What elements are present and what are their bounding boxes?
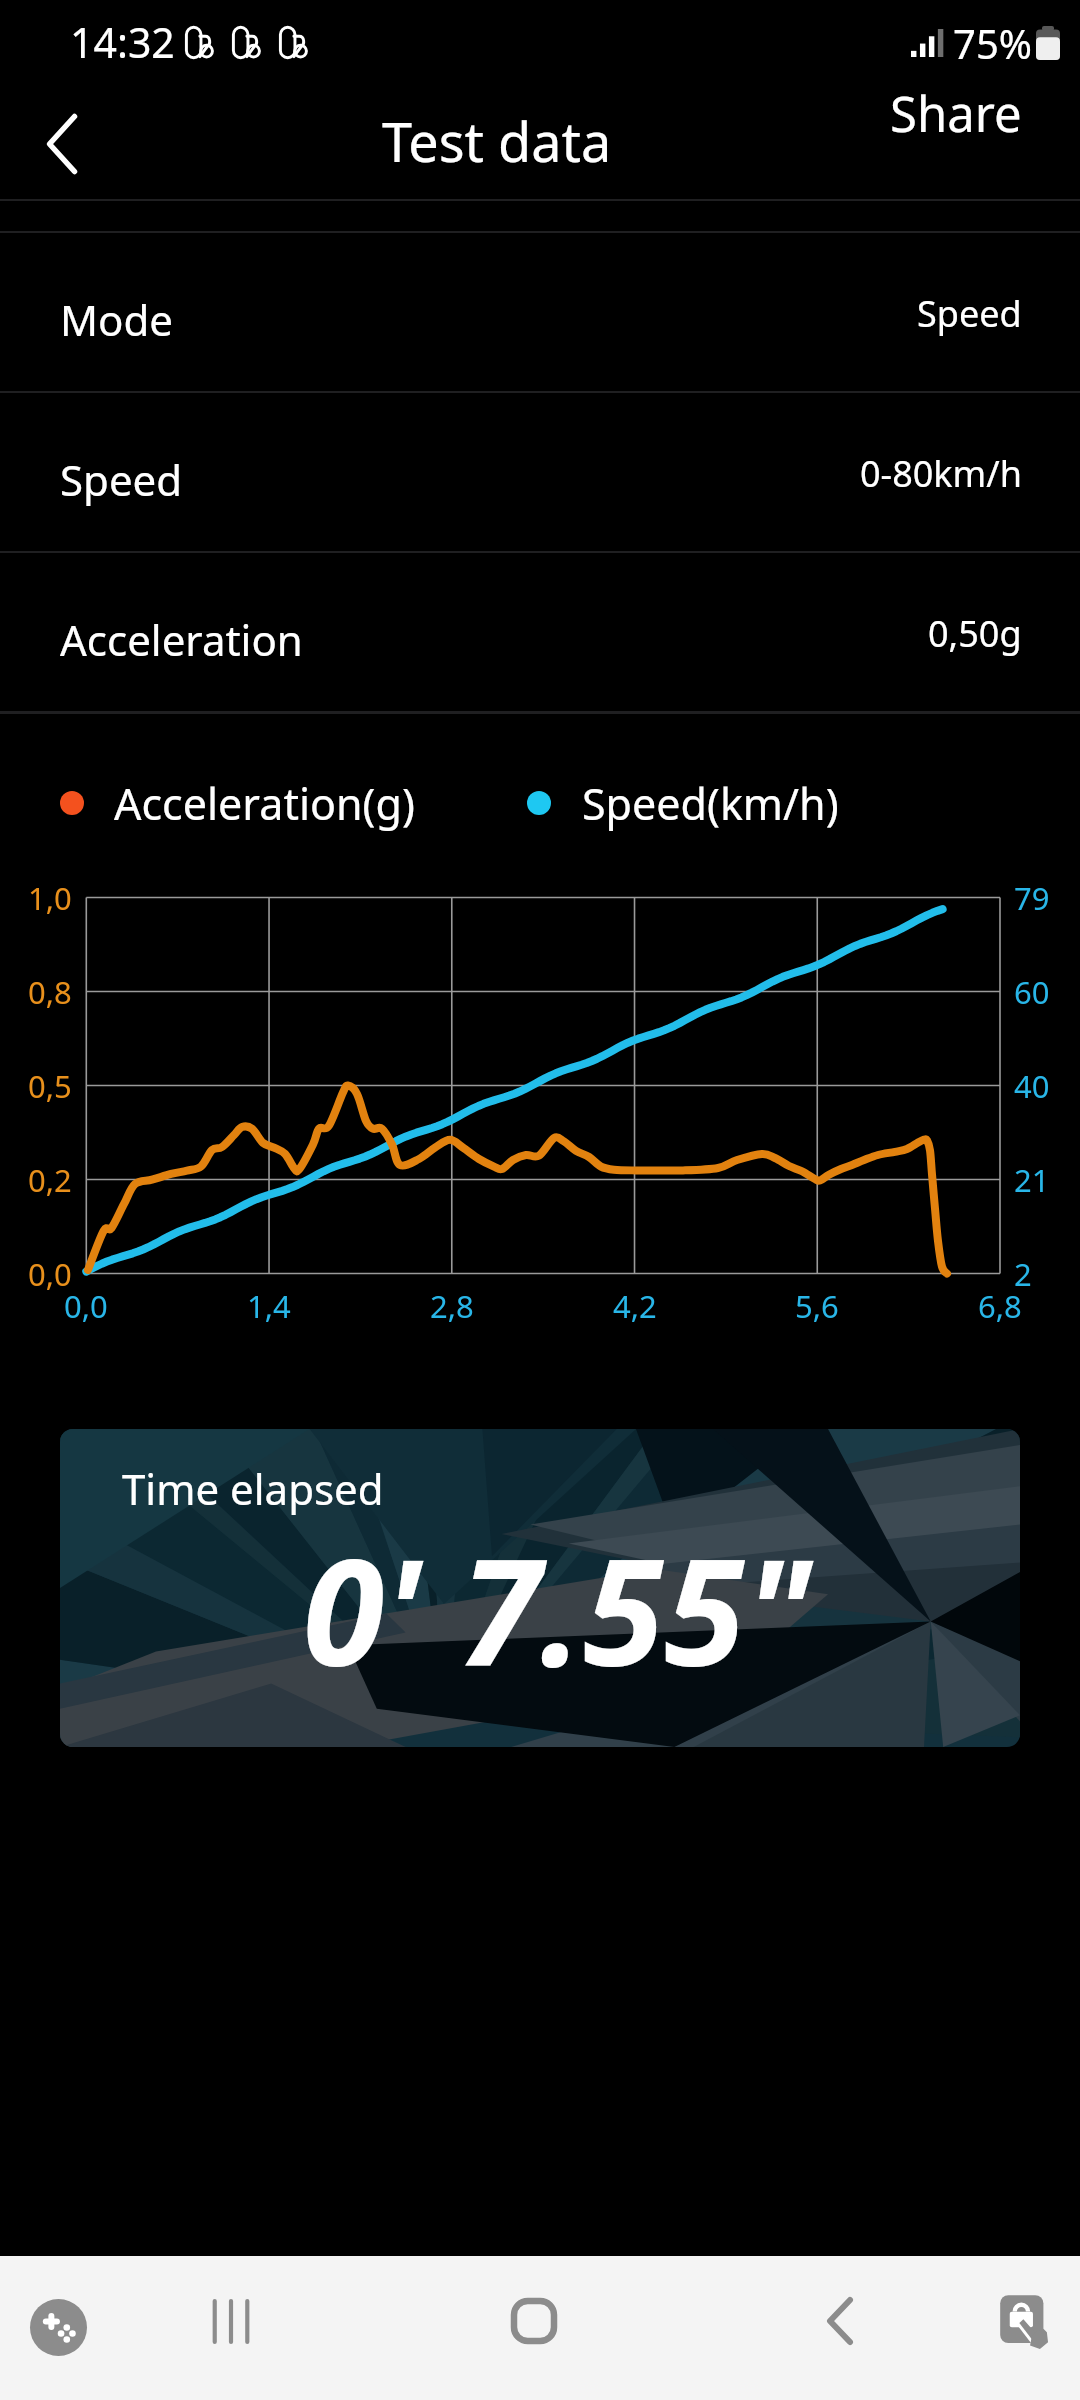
staticText: 79 <box>1014 877 1050 919</box>
button[interactable]: Mode <box>0 231 1080 391</box>
staticText: 0-80km/h <box>860 449 1022 498</box>
staticText: Speed <box>60 451 183 508</box>
staticText: Mode <box>60 291 174 348</box>
button[interactable]: Recent apps <box>178 2267 286 2375</box>
staticText: Speed(km/h) <box>582 774 839 833</box>
staticText: 0,0 <box>28 1253 72 1295</box>
staticText: Share <box>890 80 1022 147</box>
staticText: 0,8 <box>28 971 72 1013</box>
button[interactable]: Back <box>14 96 110 192</box>
button[interactable]: Acceleration <box>0 551 1080 711</box>
staticText: 21 <box>1014 1159 1050 1201</box>
staticText: 75% <box>953 16 1032 70</box>
button[interactable]: Home <box>480 2267 588 2375</box>
staticText: 0,5 <box>28 1065 72 1107</box>
staticText: 40 <box>1014 1065 1050 1107</box>
button[interactable]: Speed <box>0 391 1080 551</box>
button[interactable]: Game launcher <box>22 2291 94 2363</box>
button[interactable]: Back <box>786 2267 894 2375</box>
staticText: 2,8 <box>430 1285 474 1327</box>
staticText: 0,50g <box>928 609 1022 658</box>
staticText: Time elapsed <box>122 1460 384 1517</box>
button[interactable]: Time elapsed <box>60 1429 1020 1747</box>
staticText: Acceleration <box>60 611 303 668</box>
staticText: 0' 7.55" <box>303 1509 812 1709</box>
button[interactable]: Share <box>870 68 1042 159</box>
staticText: 2 <box>1014 1253 1032 1295</box>
staticText: 4,2 <box>613 1285 657 1327</box>
staticText: Test data <box>382 104 612 178</box>
staticText: 1,0 <box>28 877 72 919</box>
staticText: 0,2 <box>28 1159 72 1201</box>
staticText: 14:32 <box>70 14 175 70</box>
staticText: 6,8 <box>978 1285 1022 1327</box>
staticText: 60 <box>1014 971 1050 1013</box>
staticText: Acceleration(g) <box>114 774 415 833</box>
staticText: 0,0 <box>64 1285 108 1327</box>
button[interactable]: Lock screen <box>990 2287 1062 2359</box>
staticText: Speed <box>917 289 1022 338</box>
staticText: 1,4 <box>247 1285 291 1327</box>
staticText: 5,6 <box>795 1285 839 1327</box>
